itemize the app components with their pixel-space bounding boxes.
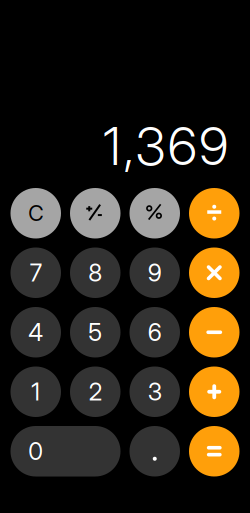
- staticText: 8: [88, 258, 102, 287]
- staticText: 2: [89, 377, 102, 406]
- staticText: 0: [28, 437, 43, 466]
- button[interactable]: Percent: [129, 188, 180, 238]
- button[interactable]: Plus: [189, 366, 239, 417]
- button[interactable]: C: [10, 188, 61, 238]
- button[interactable]: 2: [70, 366, 120, 417]
- button[interactable]: 1: [10, 366, 61, 417]
- button[interactable]: 6: [129, 307, 180, 357]
- button[interactable]: 7: [10, 247, 61, 298]
- staticText: 7: [30, 258, 42, 287]
- staticText: 1: [31, 377, 40, 406]
- staticText: 6: [148, 318, 162, 347]
- button[interactable]: 3: [129, 366, 180, 417]
- button[interactable]: 9: [129, 247, 180, 298]
- button[interactable]: Equals: [189, 426, 239, 476]
- button[interactable]: Decimal point: [129, 426, 180, 476]
- button[interactable]: Multiply: [189, 247, 239, 298]
- staticText: 3: [148, 377, 162, 406]
- button[interactable]: 5: [70, 307, 120, 357]
- button[interactable]: 8: [70, 247, 120, 298]
- staticText: 5: [88, 318, 102, 347]
- button[interactable]: Plus minus: [70, 188, 120, 238]
- staticText: 4: [28, 318, 43, 347]
- button[interactable]: 0: [10, 426, 120, 476]
- button[interactable]: Minus: [189, 307, 239, 357]
- staticText: 1,369: [103, 114, 228, 177]
- button[interactable]: 4: [10, 307, 61, 357]
- staticText: C: [28, 200, 43, 226]
- button[interactable]: Divide: [189, 188, 239, 238]
- staticText: 9: [148, 258, 162, 287]
